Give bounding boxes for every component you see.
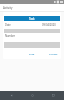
staticText: 09/04/2020 xyxy=(42,23,56,27)
staticText: Number xyxy=(5,34,16,38)
staticText: Activity xyxy=(3,6,13,10)
button[interactable]: Home xyxy=(22,91,43,100)
button[interactable]: SAVE xyxy=(27,52,37,57)
staticText: Task xyxy=(29,17,35,21)
button[interactable]: Back xyxy=(0,91,22,100)
staticText: Date xyxy=(5,23,11,27)
button[interactable]: Task xyxy=(4,16,60,21)
button[interactable]: Date xyxy=(5,23,59,27)
staticText: CANCEL xyxy=(49,53,58,56)
button[interactable]: Recent apps xyxy=(43,91,64,100)
button[interactable]: CANCEL xyxy=(47,52,60,57)
staticText: SAVE xyxy=(29,53,35,56)
